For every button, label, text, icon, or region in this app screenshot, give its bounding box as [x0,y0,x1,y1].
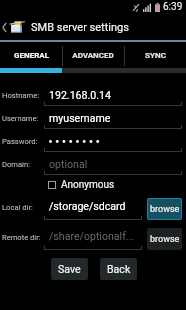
staticText: SMB server settings [31,21,129,34]
staticText: SYNC [145,51,166,60]
staticText: myusername [49,112,111,124]
button[interactable]: SYNC [124,42,186,68]
staticText: 6:39 [163,1,183,13]
button[interactable]: Anonymous [48,177,115,193]
staticText: optional [49,158,88,170]
staticText: Anonymous [61,179,115,191]
staticText: Username: [2,114,39,123]
button[interactable]: browse [147,228,182,250]
staticText: Password: [2,137,38,146]
staticText: Domain: [2,160,30,169]
staticText: browse [150,204,180,215]
button[interactable]: Navigate up [0,14,186,40]
staticText: ADVANCED [72,51,114,60]
staticText: Hostname: [2,91,40,100]
button[interactable]: GENERAL [0,42,62,68]
staticText: /storage/sdcard [49,200,126,212]
staticText: browse [150,234,180,245]
button[interactable]: browse [147,198,182,220]
staticText: Remote dir: [2,233,41,242]
button[interactable]: Back [100,258,137,280]
staticText: 192.168.0.14 [49,89,111,101]
button[interactable]: ADVANCED [62,42,124,68]
staticText: Local dir: [2,203,33,212]
staticText: GENERAL [14,51,49,60]
button[interactable]: Save [51,258,88,280]
staticText: /share/optionalf... [49,230,135,242]
staticText: Save [58,263,81,275]
staticText: Back [107,263,131,275]
